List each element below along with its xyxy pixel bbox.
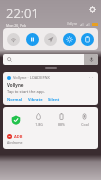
button[interactable]: 1.8G <box>27 107 50 133</box>
staticText: Vollyne <box>7 82 24 88</box>
staticText: Silent <box>48 97 60 102</box>
button[interactable]: Cool <box>73 107 96 133</box>
button[interactable]: Settings <box>88 5 97 14</box>
staticText: · · <box>89 75 94 80</box>
staticText: Tap to start the app. <box>7 89 45 94</box>
staticText: 88% <box>58 122 65 127</box>
staticText: Airdrome <box>7 140 23 145</box>
button[interactable]: Vollyne · LOADEFNX <box>3 72 98 105</box>
button[interactable]: Screenshot <box>81 33 94 46</box>
button[interactable]: Flashlight <box>63 33 76 46</box>
button[interactable]: Normal <box>7 97 23 102</box>
button[interactable]: Location <box>44 33 57 46</box>
staticText: Vibrate <box>28 97 43 102</box>
button[interactable]: Voice search <box>3 54 98 65</box>
button[interactable]: Silent <box>48 97 60 102</box>
button[interactable]: 88% <box>50 107 73 133</box>
staticText: Vollyne <box>67 22 78 26</box>
staticText: 22:01 <box>6 4 39 22</box>
staticText: Cool <box>81 122 89 127</box>
button[interactable]: Vibrate <box>28 97 43 102</box>
staticText: Normal <box>7 97 23 102</box>
button[interactable]: Wi-Fi <box>7 33 20 46</box>
staticText: Vollyne · LOADEFNX <box>13 75 50 80</box>
staticText: ADB <box>14 134 23 139</box>
button[interactable] <box>5 107 27 133</box>
button[interactable]: Mobile data <box>26 33 39 46</box>
staticText: Mon 26, Feb <box>6 23 27 28</box>
staticText: 1.8G <box>35 122 43 127</box>
button[interactable]: Voice search <box>84 54 98 65</box>
